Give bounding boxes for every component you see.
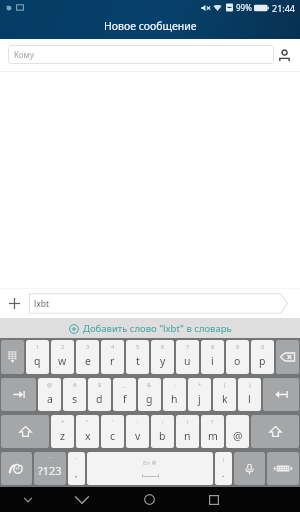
button[interactable]: ? <box>201 415 224 448</box>
staticText: ' <box>76 456 78 463</box>
button[interactable]: ' <box>101 415 124 448</box>
button[interactable]: Цифры и символы <box>34 452 66 485</box>
button[interactable]: Добавить вложение <box>0 289 29 318</box>
button[interactable]: " <box>76 415 99 448</box>
button[interactable]: Выбрать контакт <box>268 39 300 71</box>
staticText: f <box>123 392 127 406</box>
button[interactable]: Запятая <box>68 452 85 485</box>
staticText: 4 <box>111 343 115 350</box>
staticText: n <box>184 429 191 443</box>
button[interactable]: Удалить <box>276 340 299 374</box>
button[interactable]: Ввод <box>263 378 299 411</box>
staticText: ! <box>223 456 225 463</box>
staticText: e <box>85 354 91 368</box>
button[interactable]: - <box>163 378 186 411</box>
staticText: k <box>222 392 228 406</box>
button[interactable]: Назад <box>64 487 100 512</box>
button[interactable]: Регистр <box>1 415 49 448</box>
staticText: lxbt <box>34 298 49 310</box>
button[interactable]: 2 <box>51 340 74 374</box>
button[interactable]: 4 <box>101 340 124 374</box>
staticText: 9 <box>236 343 240 350</box>
button[interactable]: lxbt <box>28 293 288 314</box>
staticText: " <box>86 418 89 425</box>
button[interactable]: Настройки клавиатуры <box>267 452 299 485</box>
staticText: ? <box>211 418 214 425</box>
button[interactable]: Переключить клавиатуру <box>1 340 24 374</box>
staticText: : <box>137 418 139 425</box>
staticText: ; <box>162 418 164 425</box>
staticText: q <box>34 354 41 368</box>
staticText: 0 <box>261 343 265 350</box>
button[interactable]: 1 <box>26 340 49 374</box>
staticText: u <box>184 354 191 368</box>
staticText: r <box>110 354 115 368</box>
staticText: v <box>135 429 141 443</box>
button[interactable]: 7 <box>176 340 199 374</box>
button[interactable]: @ <box>38 378 61 411</box>
staticText: + <box>198 381 202 388</box>
button[interactable]: Пробел <box>87 452 213 485</box>
staticText: h <box>171 392 178 406</box>
button[interactable]: 3 <box>76 340 99 374</box>
staticText: Кому <box>14 49 34 60</box>
staticText: i <box>211 354 214 368</box>
button[interactable]: _ <box>113 378 136 411</box>
staticText: ) <box>249 381 251 388</box>
staticText: . <box>222 467 225 479</box>
staticText: 7 <box>186 343 190 350</box>
button[interactable]: Точка <box>215 452 232 485</box>
button[interactable]: ( <box>213 378 236 411</box>
staticText: p <box>259 354 266 368</box>
staticText: m <box>208 429 218 443</box>
staticText: , <box>75 467 78 479</box>
button[interactable]: Табуляция <box>1 378 36 411</box>
button[interactable]: Кому <box>8 45 274 64</box>
button[interactable]: * <box>51 415 74 448</box>
staticText: ! <box>187 418 189 425</box>
button[interactable]: 8 <box>201 340 224 374</box>
staticText: 21:44 <box>272 2 296 14</box>
staticText: a <box>47 392 53 406</box>
button[interactable]: Рукописный ввод <box>1 452 32 485</box>
staticText: y <box>160 354 166 368</box>
staticText: - <box>174 381 176 388</box>
button[interactable]: ; <box>151 415 174 448</box>
staticText: s <box>72 392 78 406</box>
button[interactable]: Добавить слово "lxbt" в словарь <box>0 318 300 338</box>
button[interactable]: 9 <box>226 340 249 374</box>
staticText: ?123 <box>38 463 62 478</box>
staticText: j <box>198 392 201 406</box>
button[interactable]: 6 <box>151 340 174 374</box>
staticText: ' <box>112 418 114 425</box>
button[interactable]: Скрыть клавиатуру <box>16 488 40 512</box>
button[interactable]: Недавние приложения <box>198 487 230 512</box>
button[interactable]: @ <box>226 415 249 448</box>
button[interactable]: Голосовой ввод <box>234 452 265 485</box>
staticText: @ <box>47 381 52 388</box>
button[interactable]: ) <box>238 378 261 411</box>
button[interactable]: # <box>63 378 86 411</box>
staticText: g <box>146 392 153 406</box>
button[interactable]: & <box>138 378 161 411</box>
staticText: t <box>136 354 140 368</box>
staticText: 1 <box>36 343 40 350</box>
button[interactable]: : <box>126 415 149 448</box>
button[interactable]: + <box>188 378 211 411</box>
button[interactable]: ! <box>176 415 199 448</box>
staticText: o <box>234 354 241 368</box>
staticText: & <box>147 381 152 388</box>
staticText: En ✻ <box>143 459 157 467</box>
staticText: * <box>61 418 65 425</box>
staticText: x <box>85 429 91 443</box>
staticText: 6 <box>161 343 165 350</box>
staticText: w <box>58 354 67 368</box>
button[interactable]: Регистр <box>251 415 299 448</box>
button[interactable]: 0 <box>251 340 274 374</box>
button[interactable]: Главный экран <box>133 487 165 512</box>
staticText: 2 <box>61 343 65 350</box>
staticText: _ <box>123 381 126 388</box>
staticText: # <box>73 381 77 388</box>
button[interactable]: $ <box>88 378 111 411</box>
button[interactable]: 5 <box>126 340 149 374</box>
